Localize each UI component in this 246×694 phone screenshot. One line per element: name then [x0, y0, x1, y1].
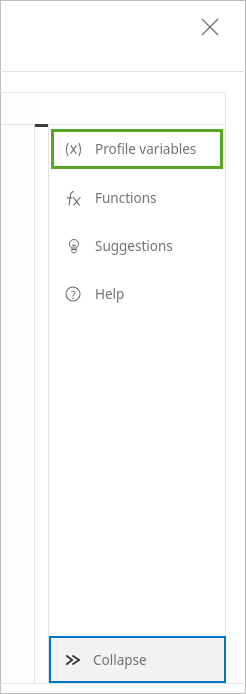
- staticText: Help: [95, 285, 125, 303]
- staticText: Functions: [95, 189, 157, 207]
- staticText: Suggestions: [95, 237, 173, 255]
- staticText: Profile variables: [95, 140, 197, 158]
- button[interactable]: Close: [197, 14, 223, 40]
- staticText: Collapse: [93, 651, 147, 669]
- button[interactable]: Profile variables: [51, 129, 223, 169]
- button[interactable]: Collapse: [49, 636, 226, 683]
- button[interactable]: Functions: [51, 178, 223, 218]
- button[interactable]: ?: [51, 274, 223, 314]
- button[interactable]: Suggestions: [51, 226, 223, 266]
- staticText: ?: [71, 287, 76, 302]
